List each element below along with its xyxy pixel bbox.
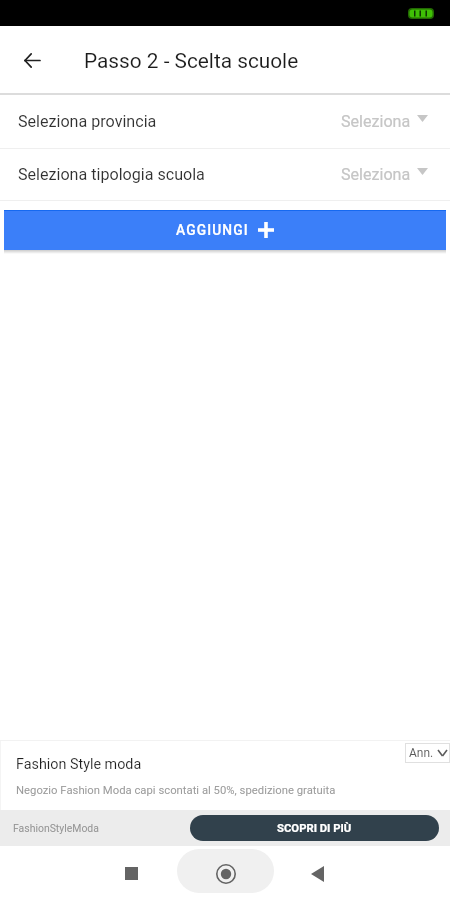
staticText: Seleziona (341, 165, 411, 184)
button[interactable]: Ann. (409, 743, 447, 763)
button[interactable]: Recent apps (110, 852, 152, 894)
button[interactable]: Home (177, 849, 274, 893)
button[interactable]: SCOPRI DI PIÙ (190, 815, 439, 841)
staticText: Ann. (409, 746, 434, 760)
button[interactable]: Seleziona provincia (0, 95, 450, 148)
staticText: FashionStyleModa (13, 822, 99, 834)
button[interactable]: Back (16, 44, 48, 76)
staticText: SCOPRI DI PIÙ (277, 822, 352, 835)
button[interactable]: AGGIUNGI (4, 210, 446, 250)
button[interactable]: Back (296, 853, 338, 895)
staticText: Seleziona (341, 112, 411, 131)
button[interactable]: Seleziona tipologia scuola (0, 149, 450, 200)
staticText: Passo 2 - Scelta scuole (84, 49, 299, 73)
staticText: Negozio Fashion Moda capi scontati al 50… (16, 784, 336, 797)
staticText: Fashion Style moda (16, 756, 142, 773)
staticText: Seleziona provincia (18, 112, 157, 131)
staticText: AGGIUNGI (176, 222, 249, 238)
staticText: Seleziona tipologia scuola (18, 165, 205, 184)
